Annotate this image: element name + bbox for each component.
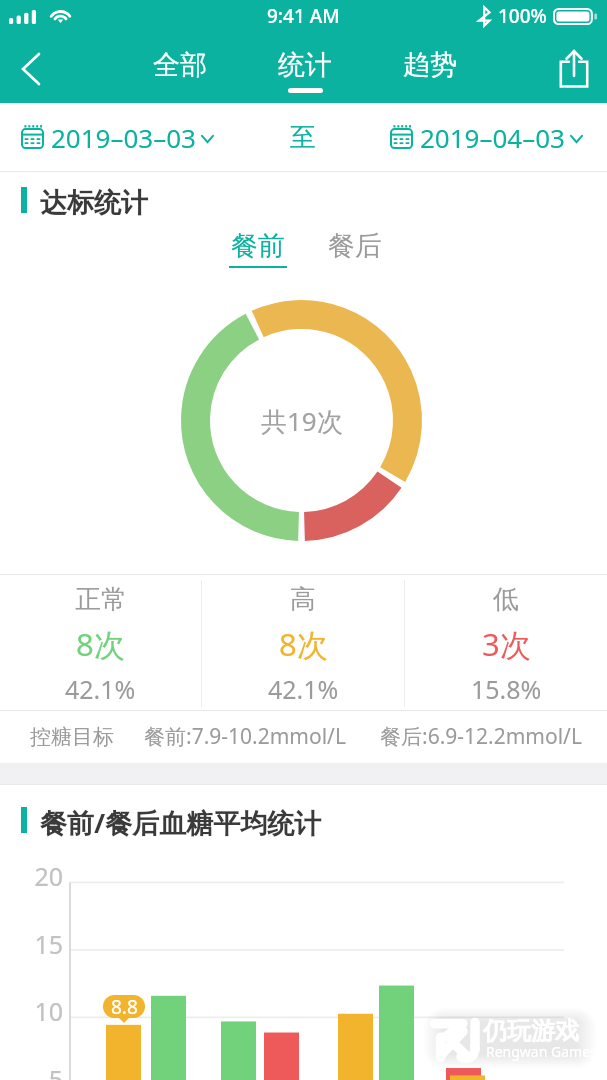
button[interactable]: 正常 [0, 574, 201, 710]
staticText: 趋势 [403, 48, 457, 82]
staticText: 10 [0, 994, 63, 1028]
button[interactable]: 趋势 [388, 34, 472, 103]
button[interactable]: Share [541, 34, 607, 103]
staticText: 20 [0, 859, 63, 893]
button[interactable]: 高 [202, 574, 404, 710]
staticText: 15 [0, 927, 63, 961]
staticText: 共19次 [261, 403, 343, 439]
button[interactable]: 统计 [263, 34, 347, 103]
staticText: 42.1% [65, 672, 136, 706]
staticText: 8次 [279, 623, 328, 665]
staticText: 2019–04–03 [420, 120, 565, 155]
button[interactable]: Back [0, 34, 62, 103]
button[interactable]: 全部 [138, 34, 222, 103]
staticText: 餐前:7.9-10.2mmol/L [144, 722, 346, 751]
staticText: 全部 [153, 48, 207, 82]
staticText: 餐后 [328, 229, 382, 263]
staticText: 3次 [482, 623, 531, 665]
staticText: 2019–03–03 [51, 120, 196, 155]
button[interactable]: 至 [275, 103, 331, 171]
staticText: 8.8 [111, 995, 138, 1017]
staticText: 5 [0, 1062, 63, 1080]
staticText: 正常 [75, 583, 127, 616]
staticText: 42.1% [268, 672, 339, 706]
staticText: 餐前 [231, 229, 285, 263]
staticText: 统计 [278, 48, 332, 82]
staticText: 餐前/餐后血糖平均统计 [40, 804, 322, 841]
button[interactable]: 低 [405, 574, 607, 710]
button[interactable]: 2019–04–03 [386, 103, 586, 171]
button[interactable]: 餐前 [222, 229, 294, 268]
staticText: Rengwan Games [486, 1042, 597, 1061]
staticText: 100% [498, 3, 547, 29]
button[interactable]: 2019–03–03 [17, 103, 217, 171]
staticText: 达标统计 [40, 186, 148, 220]
staticText: 仍玩游戏 [483, 1016, 579, 1046]
staticText: 至 [290, 121, 316, 154]
staticText: 低 [493, 583, 519, 616]
staticText: 餐后:6.9-12.2mmol/L [380, 722, 582, 751]
staticText: 9:41 AM [267, 3, 340, 29]
staticText: 8次 [76, 623, 125, 665]
staticText: 控糖目标 [30, 724, 114, 750]
staticText: 高 [290, 583, 316, 616]
button[interactable]: 餐后 [319, 229, 391, 268]
staticText: 15.8% [471, 672, 542, 706]
